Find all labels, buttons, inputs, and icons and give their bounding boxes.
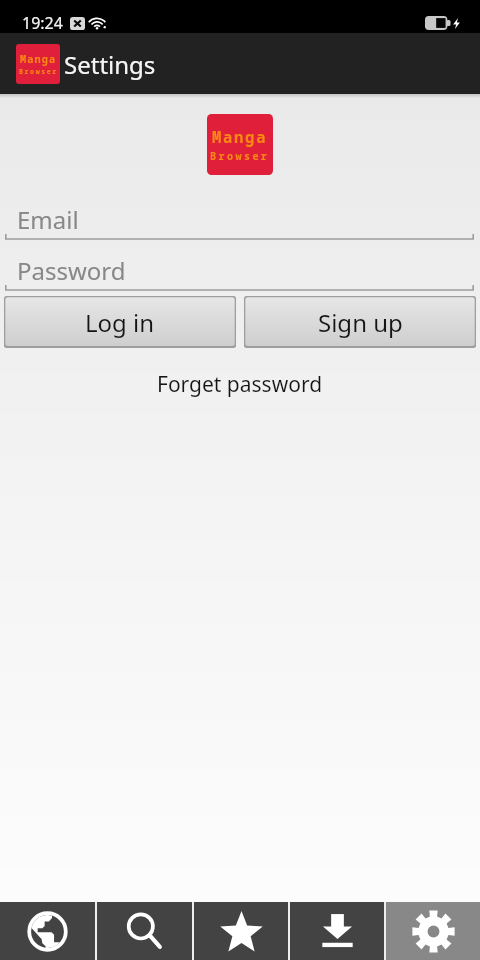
staticText: Manga (212, 126, 268, 147)
staticText: Settings (64, 48, 156, 81)
staticText: Browser (210, 149, 270, 163)
staticText: Email (17, 203, 79, 233)
button[interactable]: Email (5, 203, 474, 241)
button[interactable]: Settings (386, 902, 480, 960)
button[interactable]: Favorites (194, 902, 288, 960)
staticText: Manga (20, 52, 57, 66)
button[interactable]: Downloads (290, 902, 384, 960)
button[interactable]: Sign up (244, 296, 476, 348)
staticText: Sign up (318, 306, 403, 339)
staticText: Browser (19, 67, 58, 76)
button[interactable]: Password (5, 254, 474, 292)
button[interactable]: Browse (0, 902, 95, 960)
staticText: Log in (85, 306, 155, 339)
button[interactable]: Search (97, 902, 192, 960)
staticText: Password (17, 254, 126, 284)
staticText: 19:24 (22, 12, 63, 34)
button[interactable]: Log in (4, 296, 236, 348)
staticText: Forget password (157, 370, 323, 399)
button[interactable]: Forget password (143, 366, 337, 403)
